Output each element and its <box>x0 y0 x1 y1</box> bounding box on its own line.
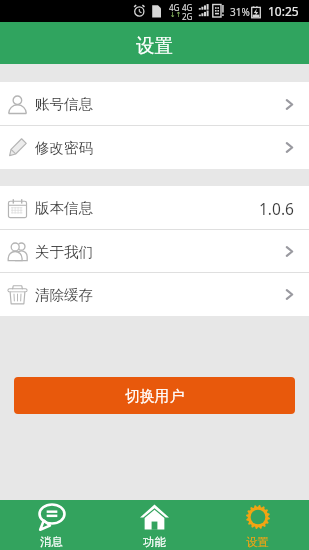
staticText: 设置 <box>246 535 269 549</box>
staticText: 设置 <box>136 34 173 57</box>
staticText: 清除缓存 <box>35 286 93 304</box>
staticText: 31% <box>230 5 250 19</box>
staticText: 消息 <box>40 535 63 549</box>
staticText: 账号信息 <box>35 95 93 113</box>
button[interactable]: 切换用户 <box>14 377 295 414</box>
button[interactable]: 设置 <box>206 500 309 550</box>
staticText: 4G <box>169 2 180 13</box>
button[interactable]: 消息 <box>0 500 103 550</box>
staticText: 10:25 <box>268 3 299 19</box>
staticText: 关于我们 <box>35 243 93 261</box>
button[interactable]: 关于我们 <box>0 230 309 273</box>
staticText: ↓↑ <box>170 11 182 19</box>
staticText: 修改密码 <box>35 139 93 157</box>
staticText: 版本信息 <box>35 199 93 217</box>
button[interactable]: 修改密码 <box>0 126 309 169</box>
staticText: 2G <box>182 11 193 22</box>
staticText: 切换用户 <box>125 387 185 406</box>
staticText: 4G <box>182 2 193 13</box>
staticText: 功能 <box>143 535 166 549</box>
button[interactable]: 清除缓存 <box>0 273 309 316</box>
staticText: 1.0.6 <box>259 198 294 219</box>
button[interactable]: 版本信息 <box>0 186 309 230</box>
button[interactable]: 账号信息 <box>0 82 309 126</box>
button[interactable]: 功能 <box>103 500 206 550</box>
